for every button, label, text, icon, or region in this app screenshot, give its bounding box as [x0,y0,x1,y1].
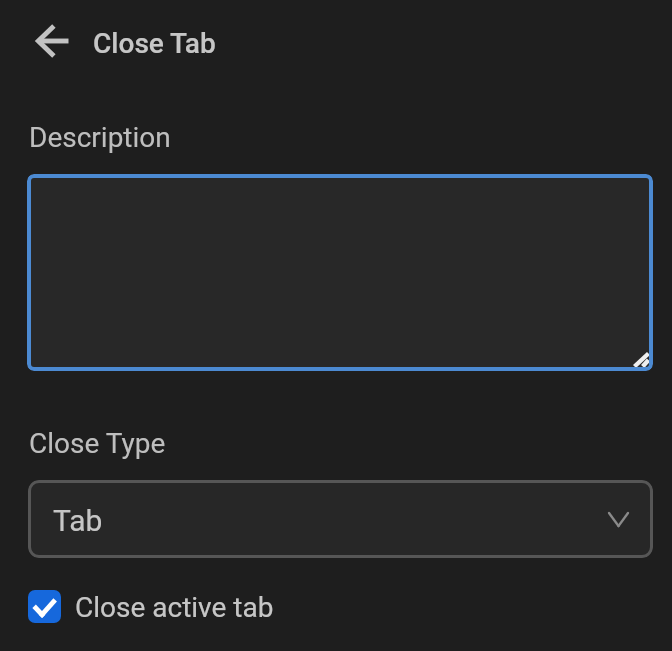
staticText: Description [29,121,171,154]
button[interactable]: Tab [28,480,653,558]
staticText: Tab [53,503,103,538]
staticText: Close Tab [93,27,216,60]
staticText: Close Type [29,427,166,460]
staticText: Close active tab [75,591,274,624]
button[interactable]: Back [30,17,78,65]
button[interactable]: Close active tab [0,582,300,630]
button[interactable]: Description input [27,174,653,371]
